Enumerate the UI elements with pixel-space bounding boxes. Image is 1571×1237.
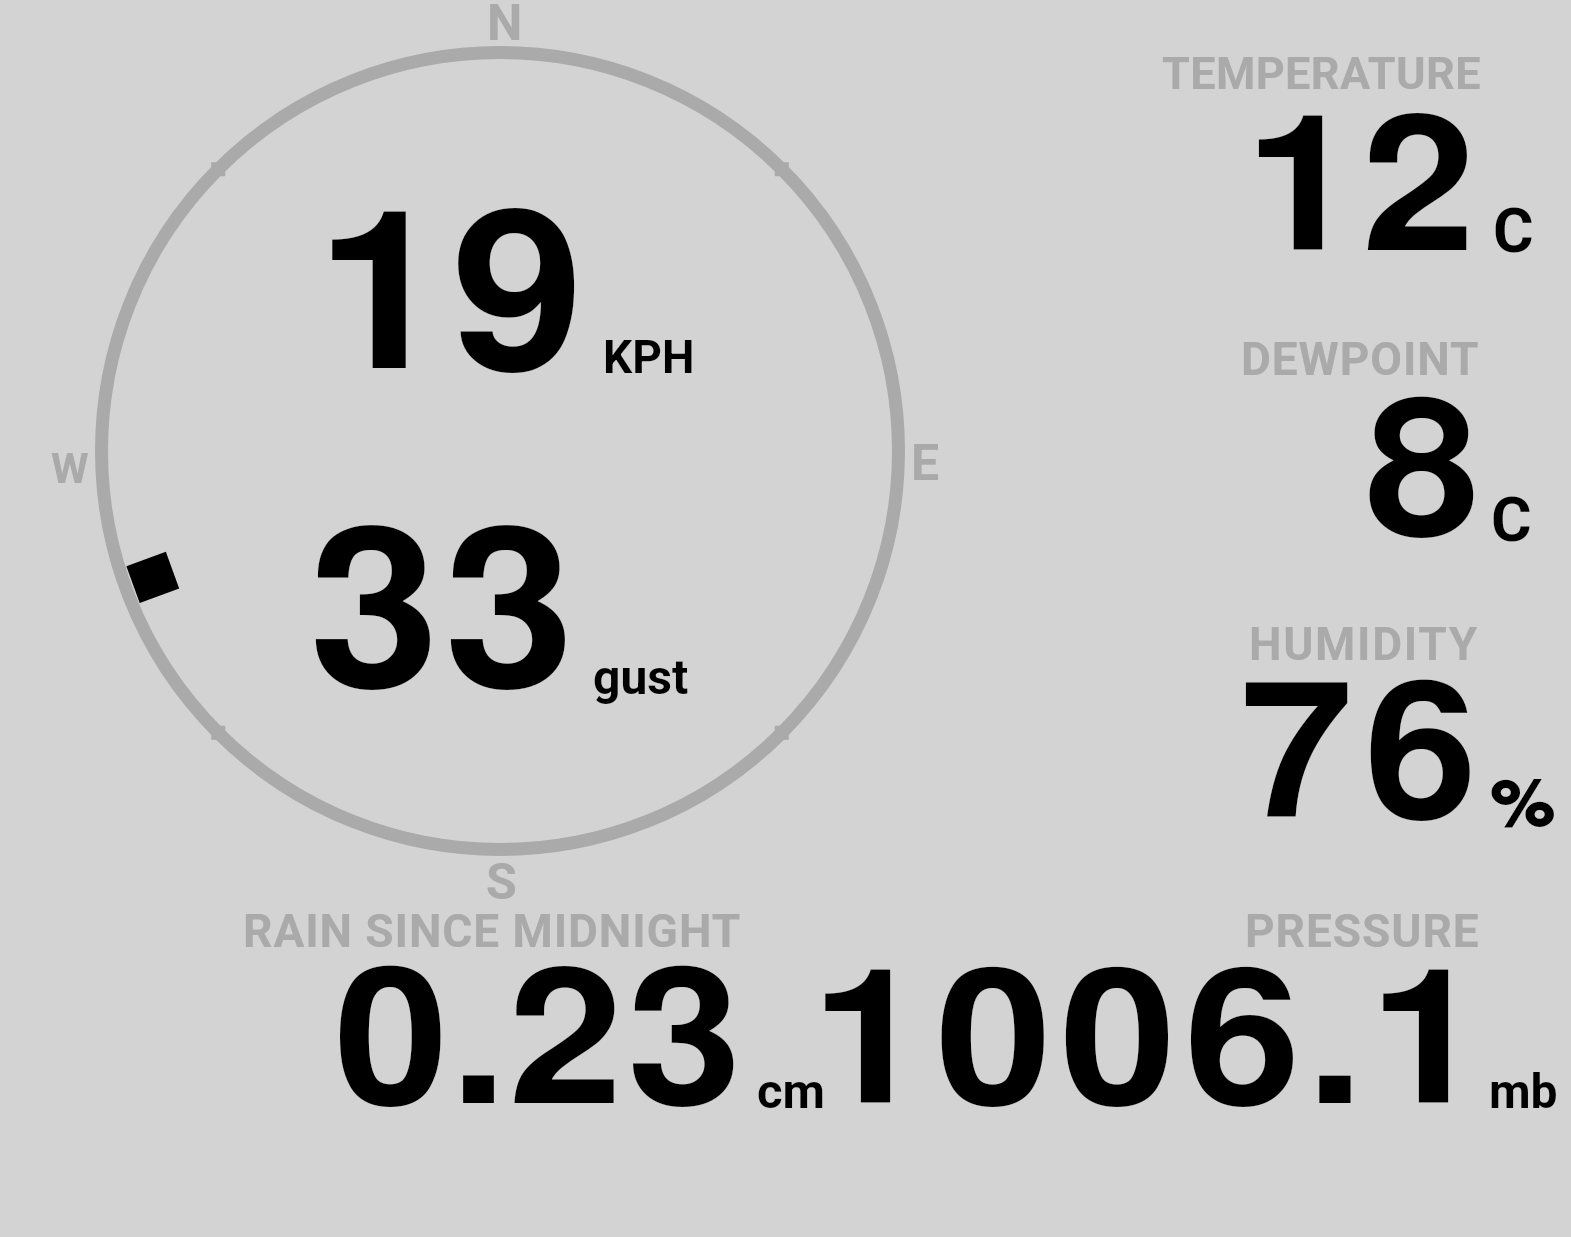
button[interactable]: Humidity 76 percent [1140,600,1571,860]
staticText: mb [1489,1063,1558,1119]
staticText: 0.23 [334,952,746,1141]
staticText: C [1491,483,1532,556]
staticText: HUMIDITY [1249,617,1479,671]
staticText: E [911,434,940,493]
button[interactable]: Dewpoint 8 degrees Celsius [1140,315,1571,575]
staticText: W [51,443,89,493]
staticText: C [1493,194,1534,267]
staticText: gust [593,649,689,705]
button[interactable]: Pressure 1006.1 millibars [845,895,1571,1135]
staticText: cm [757,1063,825,1120]
staticText: % [1491,774,1555,838]
staticText: 19 [316,191,587,412]
button[interactable]: Rain since midnight 0.23 centimetres [220,895,840,1135]
staticText: KPH [603,330,695,384]
staticText: S [486,853,517,912]
staticText: 33 [309,509,579,729]
staticText: PRESSURE [1245,904,1480,958]
staticText: DEWPOINT [1241,332,1480,386]
staticText: 76 [1240,666,1489,855]
button[interactable]: Temperature 12 degrees Celsius [1140,30,1571,290]
staticText: TEMPERATURE [1162,47,1481,100]
staticText: N [487,0,523,53]
staticText: 1006.1 [811,953,1494,1140]
staticText: 12 [1245,98,1479,288]
staticText: 8 [1365,382,1488,572]
button[interactable]: Wind 19 KPH, gusting 33, from west south… [60,10,950,900]
staticText: RAIN SINCE MIDNIGHT [243,904,742,958]
